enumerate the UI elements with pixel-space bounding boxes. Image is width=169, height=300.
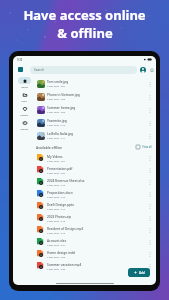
button[interactable]: La Bella Italia.jpg [35,129,155,142]
button[interactable]: More options [148,262,152,270]
button[interactable]: Proposition.docx [35,188,155,200]
button[interactable]: Tom smile.jpg [35,77,155,90]
button[interactable]: Account [140,67,146,73]
button[interactable]: More options [148,119,152,127]
staticText: 3 Feb 2024 4:30 [47,267,66,270]
button[interactable]: Files [13,91,35,105]
staticText: 3 Feb 2024 4:08 [47,97,66,100]
button[interactable]: More options [148,226,152,234]
staticText: La Bella Italia.jpg [47,132,74,136]
button[interactable]: More options [148,178,152,186]
staticText: Tom smile.jpg [47,80,69,84]
button[interactable]: Home [13,77,35,91]
staticText: Summer home.jpg [47,106,76,110]
staticText: 9:30 [17,58,23,62]
button[interactable]: More options [148,166,152,174]
staticText: 3 Feb 2024 4:25 [47,255,66,258]
button[interactable]: More options [148,214,152,222]
button[interactable]: More options [148,106,152,114]
staticText: 2023 Photos.zip [47,215,71,219]
staticText: 3 Feb 2024 4:07 [47,84,66,87]
staticText: Phone in Vietnam.jpg [47,93,80,97]
button[interactable]: Copies [13,105,35,119]
button[interactable]: Summer home.jpg [35,103,155,116]
staticText: Resident of Design.mp3 [47,227,84,231]
button[interactable]: Add [128,268,150,277]
staticText: Presentation.pdf [47,167,73,171]
staticText: Files [21,99,27,102]
button[interactable]: Summer vacation.mp4 [35,260,155,272]
staticText: 3 Feb 2024 4:18 [47,219,66,222]
staticText: Proposition.docx [47,191,73,195]
staticText: 3 Feb 2024 4:19 [47,231,66,234]
staticText: 3 Feb 2024 4:11 [47,136,66,139]
button[interactable]: Storage [149,67,154,72]
button[interactable]: 2024 Revenue Sheet.xlsx [35,176,155,188]
button[interactable]: More options [148,93,152,101]
staticText: Summer vacation.mp4 [47,263,82,267]
button[interactable]: More options [148,190,152,198]
staticText: View all [142,145,152,149]
staticText: Account.xlsx [47,239,67,243]
staticText: Add [139,271,145,275]
staticText: 3 Feb 2024 4:07 [47,171,66,174]
staticText: Home design.indd [47,251,75,255]
staticText: 3 Feb 2024 4:09 [47,110,66,113]
staticText: 3 Feb 2024 4:21 [47,243,66,246]
staticText: Gallery [20,127,29,130]
button[interactable]: Menu [18,67,23,72]
staticText: Yosemite.jpg [47,119,67,123]
staticText: Available offline [36,145,62,150]
button[interactable]: More options [148,238,152,246]
button[interactable]: Home design.indd [35,248,155,260]
staticText: & offline [57,24,113,42]
button[interactable]: More options [148,132,152,140]
button[interactable]: More options [148,202,152,210]
staticText: 2024 Revenue Sheet.xlsx [47,179,85,183]
button[interactable]: Phone in Vietnam.jpg [35,90,155,103]
staticText: 3 Feb 2024 4:10 [47,123,66,126]
button[interactable]: Draft Design.pptx [35,200,155,212]
staticText: 3 Feb 2024 4:14 [47,207,66,210]
button[interactable]: Presentation.pdf [35,164,155,176]
staticText: 3 Feb 2024 4:12 [47,195,66,198]
button[interactable]: More options [148,154,152,162]
staticText: Copies [20,113,28,116]
staticText: Search [34,68,44,72]
button[interactable]: My Videos [35,152,155,164]
staticText: 3 Feb 2024 4:10 [47,183,66,186]
button[interactable]: 2023 Photos.zip [35,212,155,224]
staticText: 3 Feb 2024 4:01 [47,159,66,162]
button[interactable]: Search [30,66,137,74]
button[interactable]: More options [148,80,152,88]
staticText: My Videos [47,155,63,159]
button[interactable]: Resident of Design.mp3 [35,224,155,236]
button[interactable]: View all [136,145,152,149]
button[interactable]: Account.xlsx [35,236,155,248]
staticText: Have access online [23,6,146,24]
button[interactable]: Yosemite.jpg [35,116,155,129]
button[interactable]: Gallery [13,119,35,133]
staticText: Draft Design.pptx [47,203,74,207]
staticText: Home [21,85,28,88]
button[interactable]: More options [148,250,152,258]
